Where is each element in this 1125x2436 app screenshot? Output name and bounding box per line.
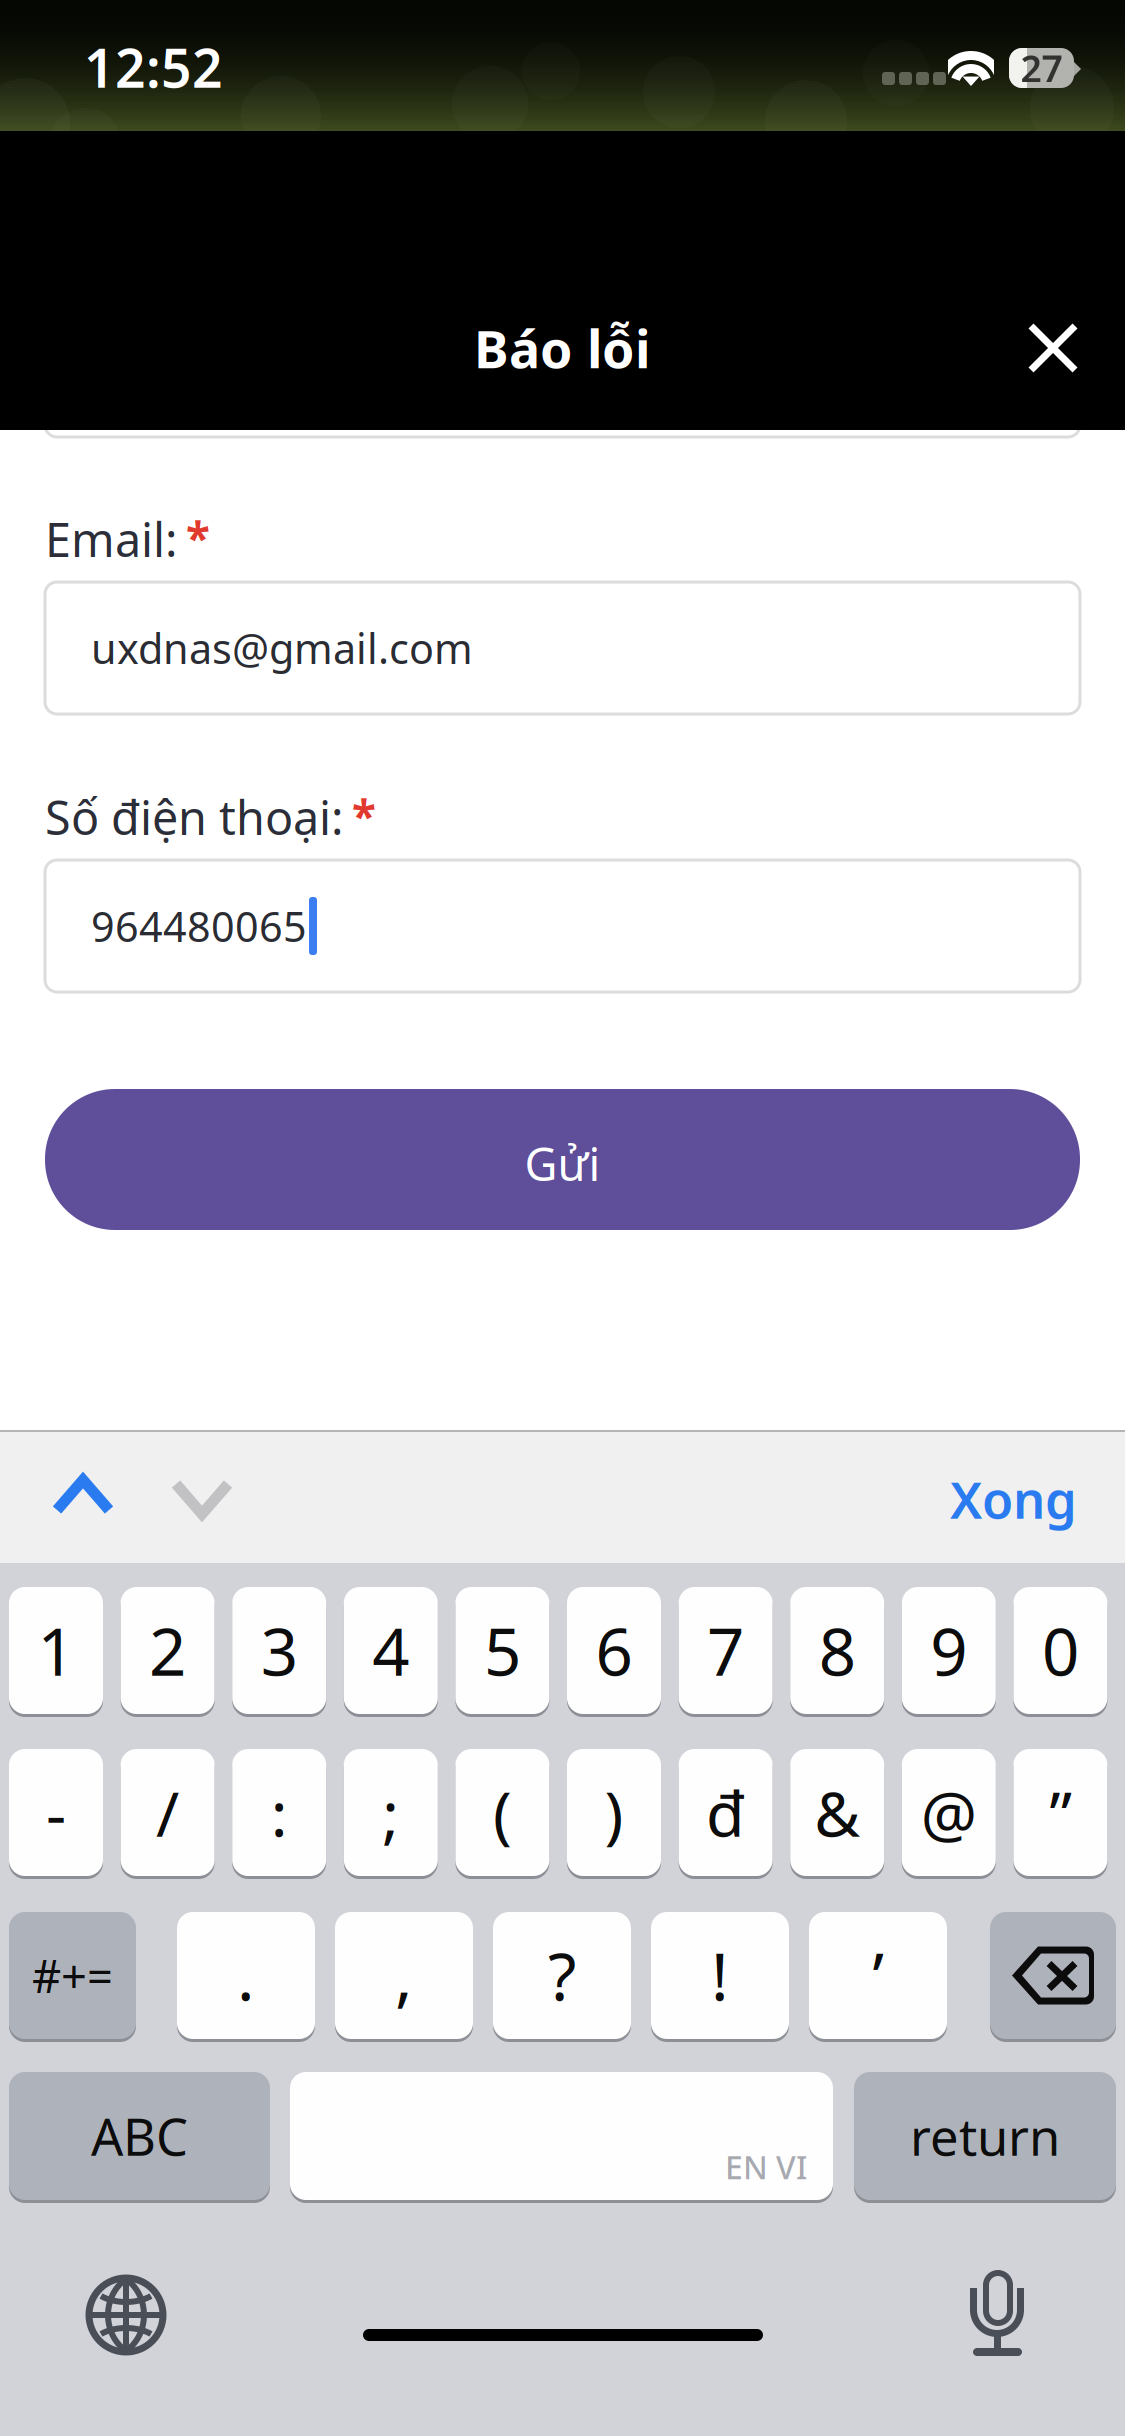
staticText: ” (1049, 1771, 1071, 1854)
button[interactable]: ; (344, 1749, 438, 1879)
button[interactable]: 8 (790, 1587, 884, 1717)
button[interactable]: Gửi (45, 1089, 1080, 1230)
button[interactable]: ? (493, 1912, 631, 2042)
button[interactable]: 2 (121, 1587, 215, 1717)
staticText: return (910, 2102, 1060, 2170)
staticText: 8 (819, 1607, 856, 1694)
button[interactable]: return (854, 2072, 1116, 2203)
staticText: ! (711, 1932, 729, 2019)
staticText: / (156, 1771, 179, 1854)
staticText: 6 (595, 1607, 632, 1694)
staticText: 9 (930, 1607, 967, 1694)
staticText: EN VI (725, 2145, 807, 2188)
staticText: : (271, 1771, 288, 1854)
staticText: 964480065 (91, 899, 307, 953)
button[interactable]: Previous field (16, 1438, 150, 1556)
staticText: đ (706, 1771, 745, 1854)
button[interactable]: ) (567, 1749, 661, 1879)
staticText: ) (604, 1771, 623, 1854)
staticText: - (46, 1771, 66, 1854)
button[interactable]: Close (983, 278, 1123, 418)
staticText: * (352, 786, 376, 844)
button[interactable]: , (335, 1912, 473, 2042)
button[interactable]: . (177, 1912, 315, 2042)
staticText: Email: (45, 508, 178, 570)
button[interactable]: : (232, 1749, 326, 1879)
button[interactable]: 6 (567, 1587, 661, 1717)
button[interactable]: Dictation (969, 2270, 1025, 2356)
staticText: 7 (707, 1607, 744, 1694)
button[interactable]: ” (1013, 1749, 1107, 1879)
staticText: Số điện thoại: (45, 786, 344, 848)
button[interactable]: / (121, 1749, 215, 1879)
button[interactable]: & (790, 1749, 884, 1879)
staticText: , (395, 1932, 413, 2019)
staticText: * (186, 508, 210, 566)
staticText: 5 (484, 1607, 521, 1694)
staticText: & (814, 1771, 860, 1854)
staticText: 4 (372, 1607, 409, 1694)
button[interactable]: Change keyboard (85, 2274, 167, 2356)
staticText: ABC (91, 2102, 188, 2170)
staticText: ; (382, 1771, 399, 1854)
button[interactable]: @ (902, 1749, 996, 1879)
button[interactable]: ( (455, 1749, 549, 1879)
button[interactable]: 7 (679, 1587, 773, 1717)
staticText: @ (921, 1771, 977, 1854)
staticText: 3 (261, 1607, 298, 1694)
button[interactable]: Xong (880, 1444, 1125, 1550)
staticText: uxdnas@gmail.com (91, 621, 473, 675)
button[interactable]: 3 (232, 1587, 326, 1717)
staticText: ( (493, 1771, 512, 1854)
button[interactable]: Delete (990, 1912, 1116, 2042)
staticText: ’ (872, 1932, 883, 2019)
button[interactable]: ABC (9, 2072, 270, 2203)
button[interactable]: #+= (9, 1912, 136, 2042)
button[interactable]: 0 (1013, 1587, 1107, 1717)
button[interactable]: ’ (809, 1912, 947, 2042)
staticText: 27 (1020, 43, 1062, 93)
button[interactable]: Next field (135, 1438, 269, 1556)
staticText: 12:52 (84, 32, 223, 102)
button[interactable]: đ (679, 1749, 773, 1879)
staticText: Báo lỗi (474, 313, 651, 383)
staticText: Gửi (524, 1133, 600, 1194)
button[interactable]: 9 (902, 1587, 996, 1717)
staticText: 2 (149, 1607, 186, 1694)
button[interactable]: - (9, 1749, 103, 1879)
button[interactable]: 1 (9, 1587, 103, 1717)
button[interactable]: ! (651, 1912, 789, 2042)
button[interactable]: 5 (455, 1587, 549, 1717)
staticText: . (237, 1932, 255, 2019)
staticText: 0 (1042, 1607, 1079, 1694)
staticText: #+= (32, 1945, 113, 2006)
staticText: Xong (950, 1465, 1077, 1533)
staticText: 1 (37, 1607, 74, 1694)
button[interactable]: Space (290, 2072, 833, 2203)
staticText: ? (548, 1932, 576, 2019)
button[interactable]: 4 (344, 1587, 438, 1717)
